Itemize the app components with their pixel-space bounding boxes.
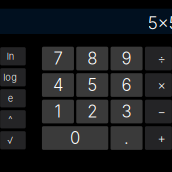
button[interactable]: − xyxy=(145,100,172,123)
button[interactable]: 0 xyxy=(42,126,108,150)
staticText: × xyxy=(157,77,165,93)
button[interactable]: 9 xyxy=(110,47,142,70)
staticText: 6 xyxy=(121,75,131,95)
button[interactable]: . xyxy=(110,126,142,150)
button[interactable]: 3 xyxy=(110,100,142,123)
button[interactable]: 4 xyxy=(42,73,74,97)
staticText: log xyxy=(3,72,17,83)
staticText: ln xyxy=(7,51,14,62)
button[interactable]: × xyxy=(145,73,172,97)
staticText: 7 xyxy=(53,48,62,69)
staticText: √ xyxy=(7,135,13,146)
button[interactable]: 6 xyxy=(110,73,142,97)
staticText: 5 xyxy=(87,75,97,95)
button[interactable]: 5 xyxy=(76,73,108,97)
button[interactable]: 1 xyxy=(42,100,74,123)
button[interactable]: ÷ xyxy=(145,47,172,70)
staticText: 0 xyxy=(70,128,80,148)
staticText: 4 xyxy=(53,75,63,95)
button[interactable]: √ xyxy=(0,131,26,149)
button[interactable]: e xyxy=(0,89,26,107)
staticText: 8 xyxy=(87,48,97,69)
staticText: 5×5 xyxy=(147,12,172,33)
button[interactable]: log xyxy=(0,68,26,86)
staticText: ÷ xyxy=(157,51,165,66)
staticText: 2 xyxy=(87,101,97,122)
staticText: ^ xyxy=(8,114,12,125)
button[interactable]: 2 xyxy=(76,100,108,123)
button[interactable]: 8 xyxy=(76,47,108,70)
button[interactable]: ^ xyxy=(0,110,26,128)
button[interactable]: ln xyxy=(0,47,26,65)
staticText: e xyxy=(8,93,13,104)
staticText: . xyxy=(124,128,129,148)
staticText: 1 xyxy=(54,101,61,122)
button[interactable]: 7 xyxy=(42,47,74,70)
staticText: − xyxy=(157,104,165,119)
button[interactable]: + xyxy=(145,126,172,150)
staticText: 3 xyxy=(121,101,131,122)
staticText: 9 xyxy=(121,48,131,69)
staticText: + xyxy=(157,130,165,146)
